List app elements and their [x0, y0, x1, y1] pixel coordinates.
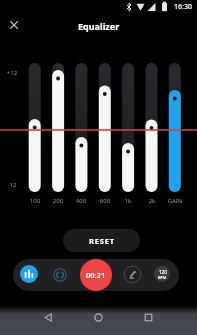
button[interactable]	[2, 13, 26, 37]
button[interactable]	[65, 306, 131, 335]
staticText: 120	[159, 269, 167, 275]
staticText: BPM	[158, 275, 167, 280]
staticText: 100	[21, 197, 49, 205]
staticText: GAIN	[161, 197, 189, 205]
staticText: -12	[2, 181, 22, 189]
staticText: 16:30	[174, 2, 192, 12]
button[interactable]	[124, 266, 141, 283]
button[interactable]	[51, 266, 69, 284]
staticText: 1k	[114, 197, 142, 205]
button[interactable]	[20, 265, 38, 283]
staticText: RESET	[89, 236, 115, 246]
staticText: 400	[67, 197, 95, 205]
button[interactable]	[0, 306, 65, 335]
button[interactable]: RESET	[63, 229, 140, 252]
staticText: Equalizer	[78, 20, 120, 32]
staticText: 600	[91, 197, 119, 205]
staticText: 2k	[138, 197, 166, 205]
staticText: +12	[2, 69, 22, 77]
staticText: 200	[44, 197, 72, 205]
button[interactable]: 00:21	[80, 259, 112, 291]
button[interactable]	[131, 306, 197, 335]
button[interactable]: 120	[154, 266, 170, 282]
staticText: 00:21	[86, 270, 106, 280]
